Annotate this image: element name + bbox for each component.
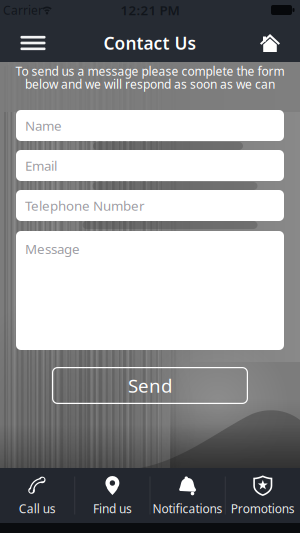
staticText: Contact Us bbox=[103, 31, 196, 54]
button[interactable]: Send bbox=[52, 367, 248, 404]
staticText: below and we will respond as soon as we … bbox=[25, 76, 275, 92]
button[interactable]: Notifications bbox=[150, 468, 225, 523]
button[interactable]: Home bbox=[252, 28, 288, 58]
staticText: Telephone Number bbox=[25, 197, 145, 214]
button[interactable]: Email bbox=[16, 150, 284, 181]
staticText: Email bbox=[25, 157, 57, 174]
button[interactable]: Name bbox=[16, 110, 284, 141]
button[interactable]: Promotions bbox=[225, 468, 300, 523]
button[interactable]: Menu bbox=[13, 28, 53, 58]
staticText: Name bbox=[25, 117, 62, 134]
staticText: Find us bbox=[93, 500, 132, 516]
staticText: 12:21 PM bbox=[120, 1, 179, 19]
button[interactable]: Find us bbox=[75, 468, 150, 523]
button[interactable]: Telephone Number bbox=[16, 190, 284, 221]
staticText: Message bbox=[25, 240, 80, 258]
staticText: Notifications bbox=[153, 500, 223, 516]
staticText: Promotions bbox=[231, 500, 295, 516]
button[interactable]: Message bbox=[16, 231, 284, 350]
staticText: Call us bbox=[19, 500, 56, 516]
staticText: To send us a message please complete the… bbox=[15, 63, 284, 79]
staticText: Carrier bbox=[3, 2, 43, 18]
staticText: Send bbox=[128, 373, 172, 398]
button[interactable]: Call us bbox=[0, 468, 74, 523]
